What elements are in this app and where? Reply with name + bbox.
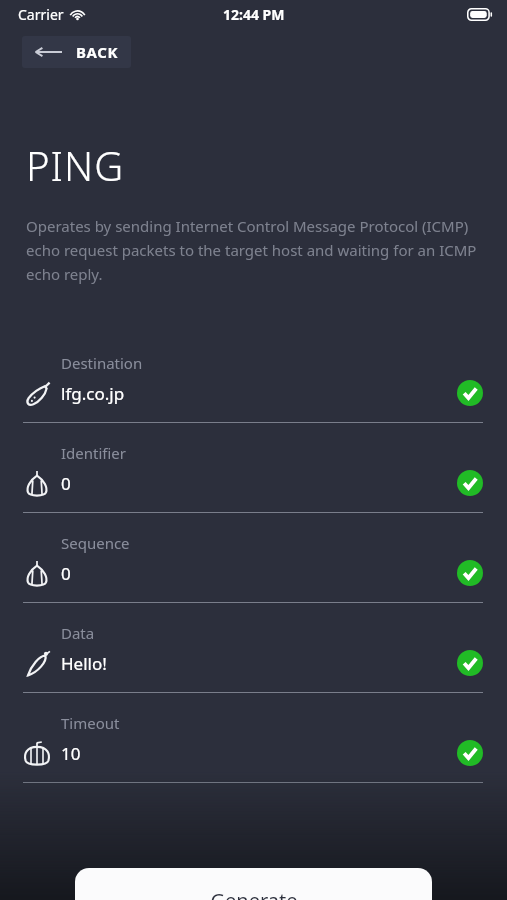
other: Timeout — [22, 739, 52, 769]
button[interactable]: Data — [0, 612, 507, 702]
staticText: Data — [61, 623, 95, 643]
button[interactable]: Identifier — [0, 432, 507, 522]
staticText: Operates by sending Internet Control Mes… — [26, 216, 481, 284]
staticText: 0 — [61, 472, 71, 495]
staticText: Identifier — [61, 443, 127, 463]
staticText: Carrier — [18, 5, 64, 24]
other: Sequence — [22, 559, 52, 589]
staticText: Sequence — [61, 533, 130, 553]
staticText: PING — [26, 138, 125, 192]
staticText: Generate — [210, 887, 298, 900]
staticText: 10 — [61, 742, 81, 765]
button[interactable]: Generate — [75, 868, 432, 900]
staticText: 0 — [61, 562, 71, 585]
button[interactable]: Destination — [0, 342, 507, 432]
staticText: Hello! — [61, 652, 107, 675]
staticText: Destination — [61, 353, 143, 373]
other: Data — [22, 649, 52, 679]
staticText: Timeout — [61, 713, 120, 733]
other: Identifier — [22, 469, 52, 499]
staticText: BACK — [76, 42, 119, 62]
staticText: lfg.co.jp — [61, 382, 125, 405]
staticText: 12:44 PM — [223, 5, 285, 24]
other: Destination — [22, 379, 52, 409]
button[interactable]: BACK — [22, 36, 131, 68]
button[interactable]: Sequence — [0, 522, 507, 612]
button[interactable]: Timeout — [0, 702, 507, 792]
